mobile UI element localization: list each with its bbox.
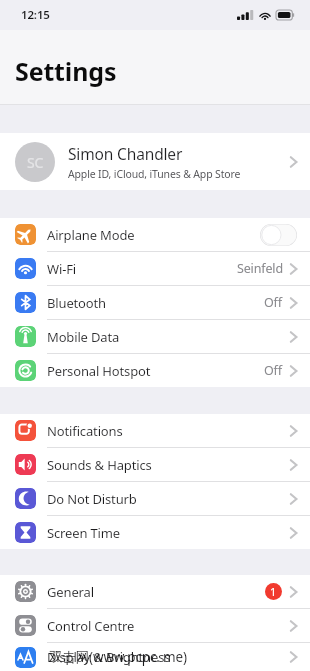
button[interactable]: SC: [0, 133, 310, 190]
button[interactable]: Do Not Disturb: [0, 482, 310, 515]
staticText: Display & Brightness: [47, 648, 171, 666]
staticText: Airplane Mode: [47, 226, 260, 244]
staticText: Off: [264, 362, 283, 379]
staticText: Wi-Fi: [47, 260, 237, 278]
staticText: 1: [270, 584, 277, 599]
button[interactable]: Personal Hotspot: [0, 354, 310, 387]
staticText: SC: [27, 153, 44, 172]
button[interactable]: Airplane Mode toggle: [260, 224, 297, 246]
staticText: Off: [264, 294, 283, 311]
button[interactable]: Screen Time: [0, 516, 310, 549]
button[interactable]: Bluetooth: [0, 286, 310, 319]
staticText: Sounds & Haptics: [47, 456, 290, 474]
staticText: Do Not Disturb: [47, 490, 290, 508]
staticText: Notifications: [47, 422, 290, 440]
button[interactable]: Wi-Fi: [0, 252, 310, 285]
staticText: Seinfeld: [237, 260, 283, 277]
button[interactable]: Mobile Data: [0, 320, 310, 353]
button[interactable]: Display & Brightness: [0, 643, 310, 671]
staticText: 双击网(www.pcpc. me): [49, 648, 187, 666]
staticText: 12:15: [21, 7, 50, 23]
staticText: Personal Hotspot: [47, 362, 264, 380]
staticText: Bluetooth: [47, 294, 264, 312]
staticText: Control Centre: [47, 617, 290, 635]
staticText: Simon Chandler: [68, 143, 183, 164]
button[interactable]: General: [0, 575, 310, 608]
button[interactable]: Airplane Mode: [0, 218, 310, 251]
staticText: Screen Time: [47, 524, 290, 542]
staticText: Mobile Data: [47, 328, 290, 346]
staticText: Apple ID, iCloud, iTunes & App Store: [68, 167, 241, 181]
button[interactable]: Notifications: [0, 414, 310, 447]
button[interactable]: Control Centre: [0, 609, 310, 642]
button[interactable]: Sounds & Haptics: [0, 448, 310, 481]
staticText: Settings: [15, 54, 117, 88]
staticText: General: [47, 583, 265, 601]
